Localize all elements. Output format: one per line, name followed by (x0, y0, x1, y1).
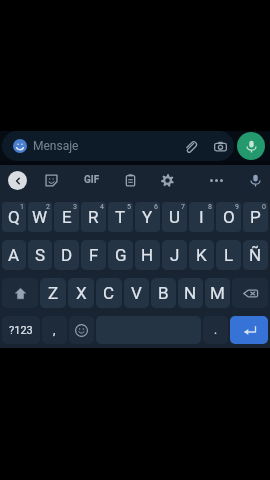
staticText: K (196, 245, 207, 265)
button[interactable]: ?123 (2, 316, 40, 344)
staticText: 1 (20, 203, 24, 211)
staticText: 8 (208, 203, 212, 211)
button[interactable]: Stickers (34, 165, 69, 195)
staticText: 2 (46, 203, 50, 211)
button[interactable]: I (189, 202, 214, 232)
button[interactable]: B (151, 278, 176, 308)
staticText: D (61, 245, 73, 265)
staticText: T (115, 207, 126, 227)
button[interactable]: S (28, 240, 52, 270)
staticText: Ñ (249, 245, 262, 265)
staticText: , (53, 323, 56, 337)
staticText: Y (142, 207, 153, 227)
button[interactable]: Mensaje (2, 131, 234, 161)
button[interactable]: L (216, 240, 241, 270)
staticText: Mensaje (33, 139, 79, 153)
staticText: Z (48, 283, 59, 303)
staticText: ?123 (9, 324, 33, 337)
button[interactable]: U (162, 202, 187, 232)
button[interactable]: Z (40, 278, 66, 308)
staticText: M (210, 283, 225, 303)
button[interactable]: T (108, 202, 133, 232)
button[interactable]: X (68, 278, 94, 308)
staticText: GIF (84, 174, 100, 186)
staticText: 6 (154, 203, 158, 211)
button[interactable]: H (135, 240, 160, 270)
button[interactable]: More options (199, 165, 234, 195)
staticText: A (8, 245, 20, 265)
staticText: Q (8, 207, 20, 227)
button[interactable]: F (81, 240, 106, 270)
staticText: 9 (235, 203, 239, 211)
staticText: S (35, 245, 46, 265)
staticText: B (158, 283, 169, 303)
button[interactable]: Clipboard (113, 165, 148, 195)
button[interactable]: Emoji (69, 316, 94, 344)
staticText: . (214, 323, 218, 337)
staticText: X (76, 283, 87, 303)
staticText: 7 (181, 203, 185, 211)
button[interactable]: V (124, 278, 149, 308)
button[interactable]: . (203, 316, 228, 344)
staticText: R (88, 207, 99, 227)
button[interactable]: Ñ (243, 240, 268, 270)
staticText: P (250, 207, 261, 227)
button[interactable]: Q (2, 202, 26, 232)
staticText: L (224, 245, 234, 265)
staticText: 4 (100, 203, 104, 211)
button[interactable]: M (205, 278, 230, 308)
staticText: V (131, 283, 142, 303)
staticText: U (169, 207, 181, 227)
staticText: F (89, 245, 99, 265)
button[interactable]: Backspace (232, 278, 268, 308)
button[interactable]: Settings (150, 165, 185, 195)
staticText: C (103, 283, 115, 303)
button[interactable]: Shift (2, 278, 38, 308)
button[interactable]: N (178, 278, 203, 308)
button[interactable]: Enter (230, 316, 268, 344)
staticText: G (115, 245, 127, 265)
button[interactable]: W (28, 202, 52, 232)
staticText: I (199, 207, 204, 227)
button[interactable]: P (243, 202, 268, 232)
button[interactable]: K (189, 240, 214, 270)
button[interactable]: A (2, 240, 26, 270)
staticText: W (32, 207, 48, 227)
button[interactable]: Y (135, 202, 160, 232)
button[interactable]: E (54, 202, 79, 232)
staticText: H (141, 245, 154, 265)
button[interactable]: G (108, 240, 133, 270)
staticText: E (62, 207, 72, 227)
button[interactable]: GIF (74, 165, 109, 195)
staticText: 3 (73, 203, 77, 211)
button[interactable]: Voice input (238, 165, 270, 195)
button[interactable]: Back (0, 165, 35, 195)
staticText: O (223, 207, 235, 227)
button[interactable]: , (42, 316, 67, 344)
button[interactable]: O (216, 202, 241, 232)
staticText: N (184, 283, 197, 303)
button[interactable]: C (96, 278, 122, 308)
staticText: J (170, 245, 180, 265)
button[interactable]: D (54, 240, 79, 270)
button[interactable]: R (81, 202, 106, 232)
button[interactable]: Record voice message (237, 132, 265, 160)
button[interactable]: Attach file (177, 133, 203, 159)
button[interactable]: Camera (207, 133, 233, 159)
button[interactable]: J (162, 240, 187, 270)
staticText: 0 (262, 203, 266, 211)
staticText: 5 (127, 203, 131, 211)
